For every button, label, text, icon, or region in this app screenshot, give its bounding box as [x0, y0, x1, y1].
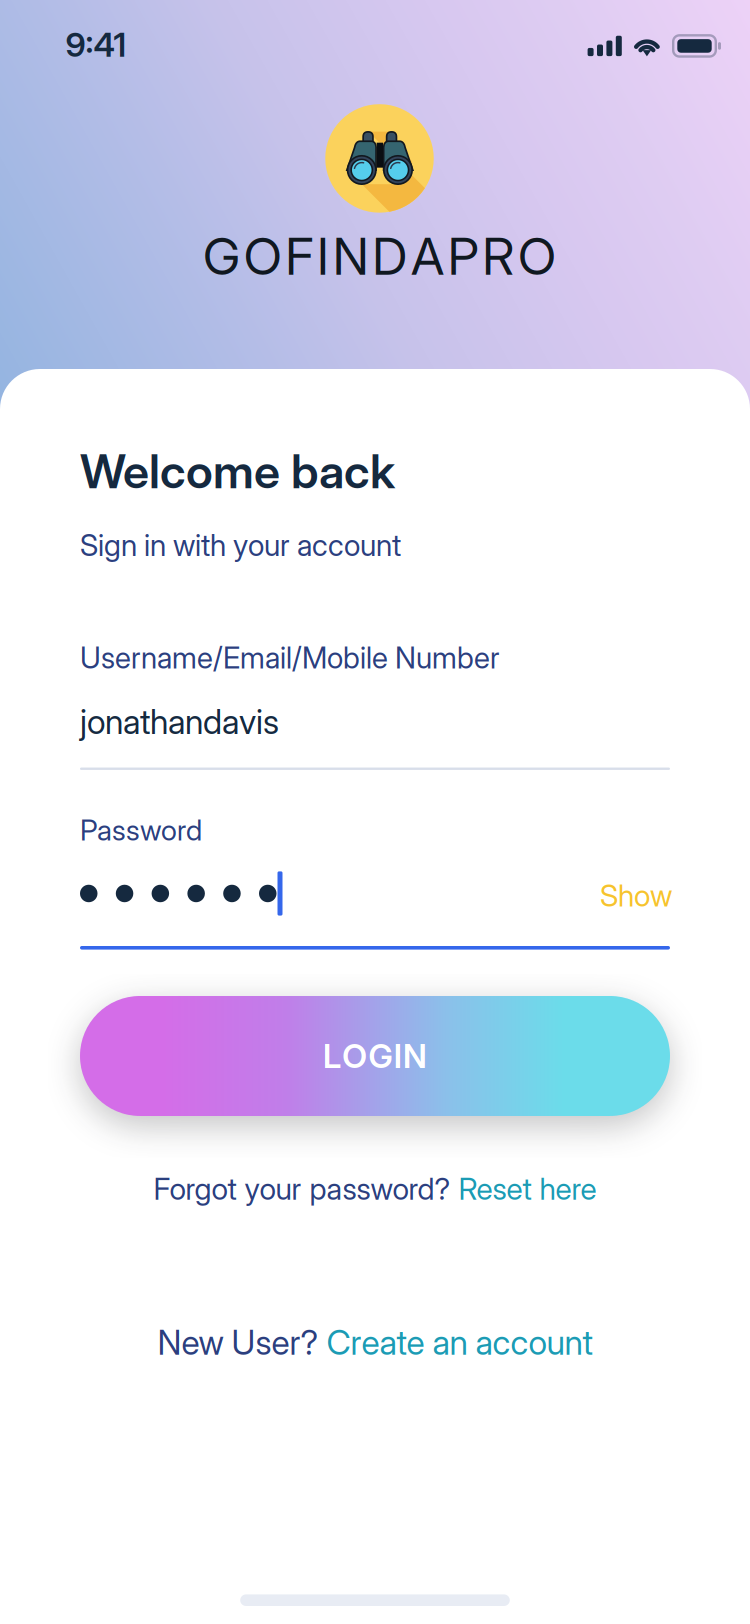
staticText: Forgot your password? — [153, 1171, 458, 1207]
staticText: Username/Email/Mobile Number — [80, 640, 500, 676]
staticText: Welcome back — [80, 443, 395, 499]
button[interactable]: Username/Email/Mobile Number, jonathanda… — [80, 640, 670, 770]
button[interactable]: Login — [80, 996, 670, 1116]
button[interactable]: New User? Create an account — [157, 1322, 592, 1363]
staticText: Sign in with your account — [80, 527, 401, 563]
staticText: New User? — [157, 1322, 326, 1363]
staticText: jonathandavis — [80, 701, 279, 742]
staticText: Show — [600, 878, 672, 914]
button[interactable]: Forgot your password? Reset here — [153, 1171, 596, 1207]
staticText: 9:41 — [65, 25, 126, 65]
button[interactable]: Password field — [80, 871, 580, 915]
group: GOFINDAPRO — [203, 226, 556, 287]
staticText: Password — [80, 813, 202, 847]
button[interactable]: Show — [598, 873, 670, 914]
staticText: Create an account — [326, 1322, 592, 1363]
staticText: Reset here — [458, 1171, 596, 1207]
